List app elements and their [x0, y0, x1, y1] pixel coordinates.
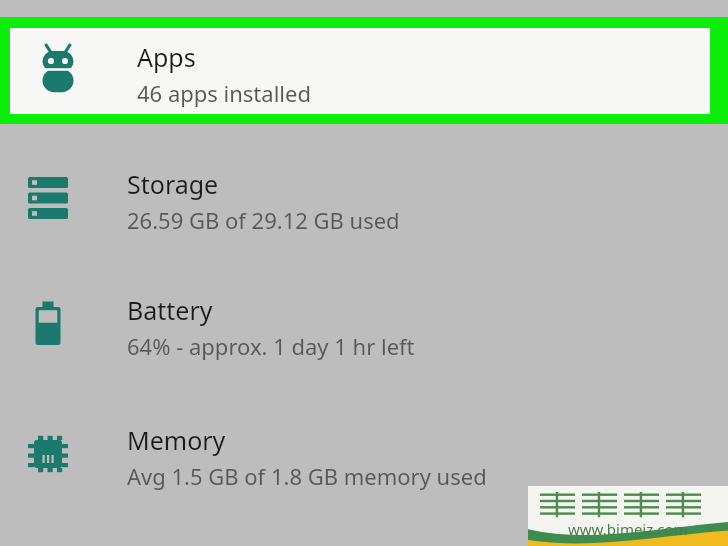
staticText: www.bimeiz.com — [568, 519, 688, 539]
staticText: 46 apps installed — [137, 78, 311, 108]
staticText: Battery — [127, 293, 213, 327]
button[interactable]: Memory — [0, 414, 728, 498]
staticText: 26.59 GB of 29.12 GB used — [127, 205, 400, 235]
button[interactable]: Apps — [0, 17, 728, 124]
staticText: Apps — [137, 40, 196, 74]
staticText: 64% - approx. 1 day 1 hr left — [127, 331, 415, 361]
button[interactable]: Battery — [0, 284, 728, 368]
button[interactable]: Storage — [0, 158, 728, 242]
staticText: Memory — [127, 423, 226, 457]
staticText: Avg 1.5 GB of 1.8 GB memory used — [127, 461, 487, 491]
staticText: Storage — [127, 167, 219, 201]
